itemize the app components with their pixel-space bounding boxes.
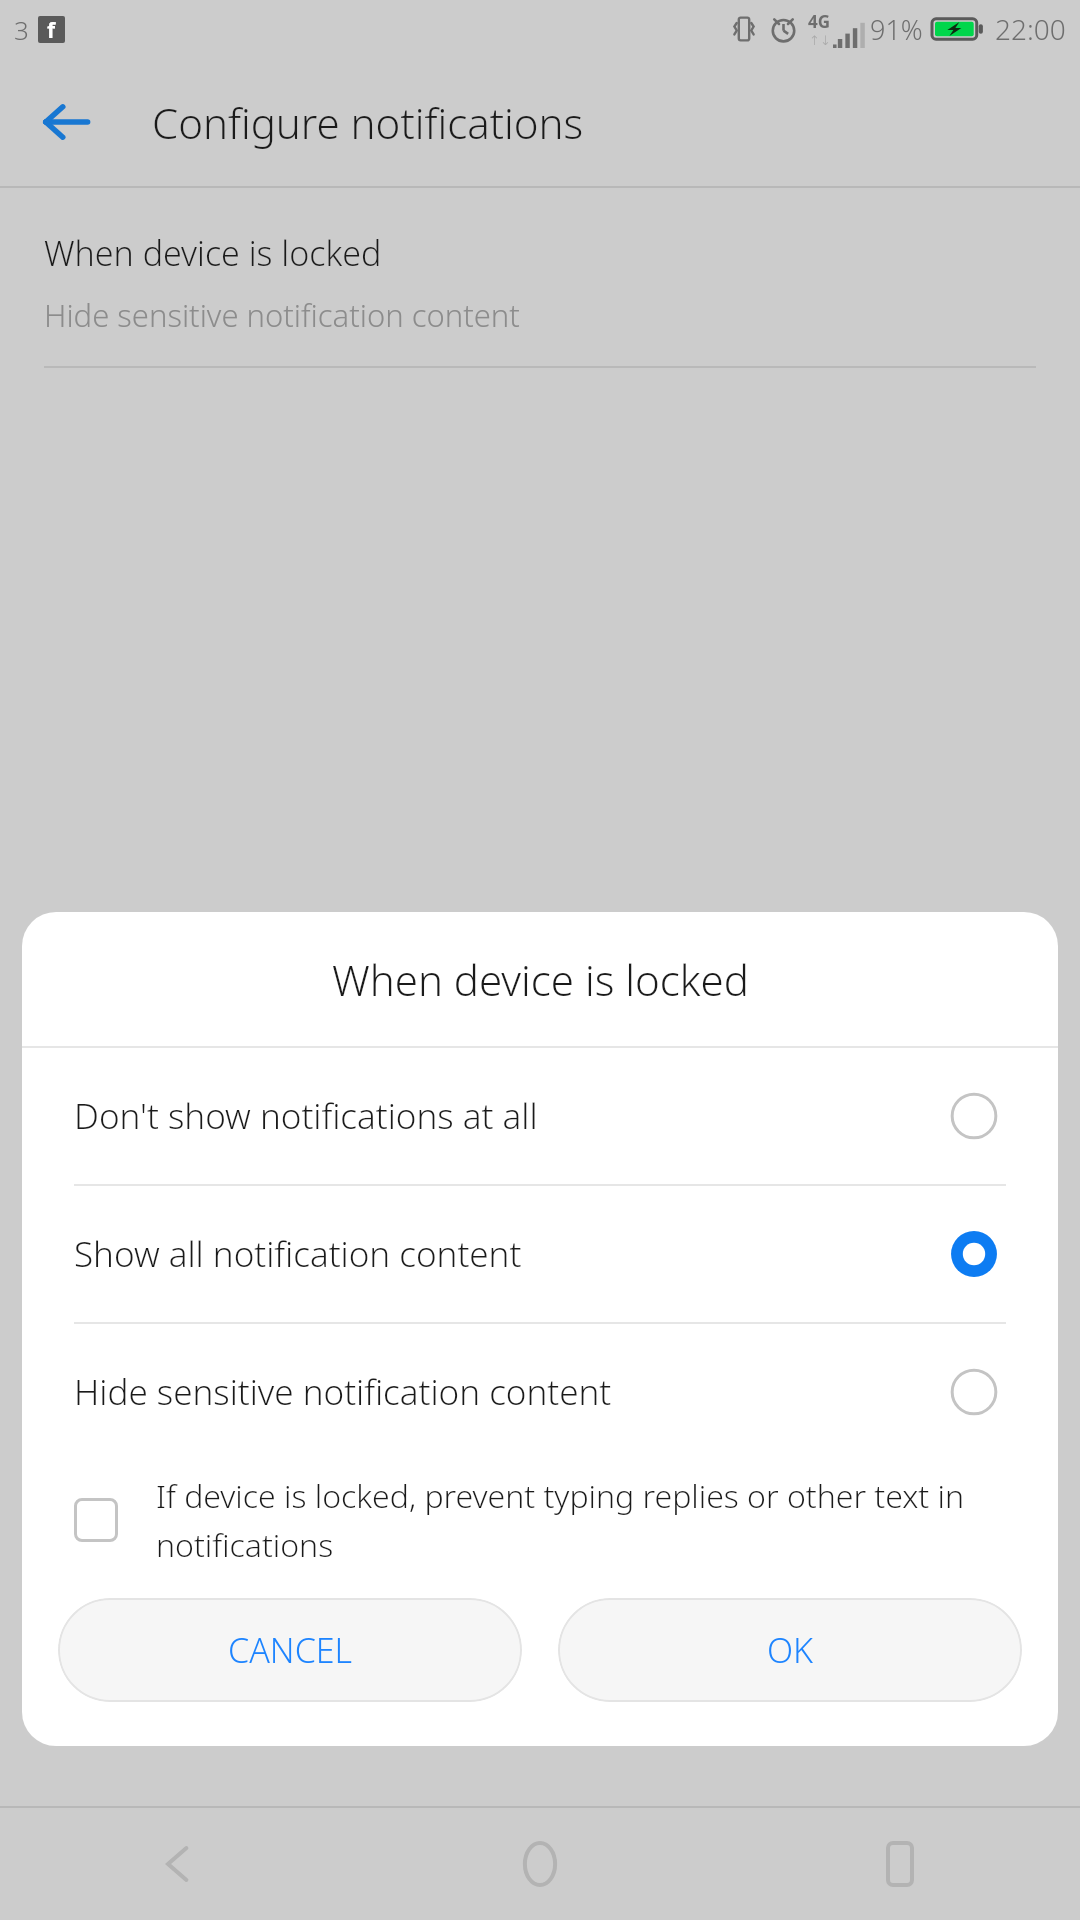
button[interactable]: OK: [558, 1598, 1022, 1702]
button[interactable]: Show all notification content: [22, 1186, 1058, 1322]
staticText: CANCEL: [228, 1627, 353, 1673]
button[interactable]: Hide sensitive notification content: [22, 1324, 1058, 1460]
staticText: When device is locked: [332, 951, 749, 1008]
staticText: f: [47, 16, 56, 43]
staticText: Hide sensitive notification content: [44, 294, 520, 336]
staticText: 22:00: [995, 10, 1066, 48]
staticText: 3: [14, 12, 29, 47]
staticText: Show all notification content: [74, 1230, 946, 1278]
staticText: 4G: [808, 10, 831, 33]
button[interactable]: When device is locked: [0, 188, 1080, 368]
button[interactable]: Don't show notifications at all: [22, 1048, 1058, 1184]
staticText: ↑↓: [809, 33, 831, 48]
staticText: Configure notifications: [152, 94, 584, 151]
staticText: When device is locked: [44, 230, 382, 276]
staticText: OK: [767, 1627, 814, 1673]
staticText: Hide sensitive notification content: [74, 1368, 946, 1416]
button[interactable]: CANCEL: [58, 1598, 522, 1702]
staticText: Don't show notifications at all: [74, 1092, 946, 1140]
staticText: If device is locked, prevent typing repl…: [156, 1474, 1002, 1566]
button[interactable]: Back: [30, 86, 102, 158]
button[interactable]: If device is locked, prevent typing repl…: [22, 1460, 1058, 1580]
staticText: 91%: [870, 11, 923, 48]
